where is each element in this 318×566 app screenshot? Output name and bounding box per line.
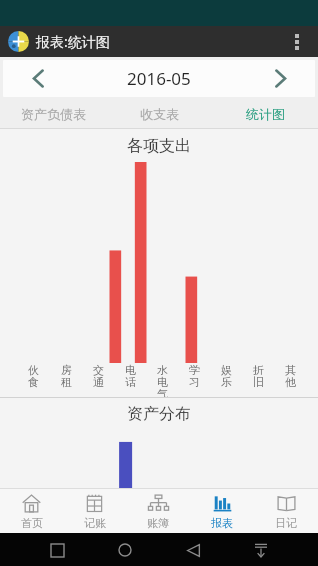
button[interactable]: 记账: [63, 489, 126, 533]
button[interactable]: 账簿: [126, 489, 190, 533]
button[interactable]: Hide navigation bar: [246, 535, 276, 565]
button[interactable]: 收支表: [106, 100, 212, 128]
button[interactable]: Home: [110, 535, 140, 565]
button[interactable]: 日记: [254, 489, 318, 533]
button[interactable]: Recent apps: [42, 535, 72, 565]
staticText: 报表:统计图: [36, 32, 110, 51]
staticText: 2016-05: [127, 67, 191, 90]
button[interactable]: 统计图: [212, 100, 318, 128]
staticText: 各项支出: [127, 136, 191, 156]
staticText: 水 电 气: [157, 363, 168, 397]
staticText: 收支表: [140, 106, 179, 122]
button[interactable]: 资产负债表: [0, 100, 106, 128]
staticText: 伙 食: [28, 363, 39, 389]
staticText: 折 旧: [253, 363, 264, 389]
staticText: 房 租: [61, 363, 72, 389]
button[interactable]: More options: [284, 29, 310, 55]
staticText: 娱 乐: [221, 363, 232, 389]
button[interactable]: Back: [178, 535, 208, 565]
staticText: 资产负债表: [21, 106, 86, 122]
button[interactable]: 首页: [0, 489, 63, 533]
staticText: 首页: [21, 516, 43, 530]
button[interactable]: Previous month: [3, 60, 73, 97]
staticText: 账簿: [147, 516, 169, 530]
staticText: 交 通: [93, 363, 104, 389]
staticText: 其 他: [285, 363, 296, 389]
staticText: 电 话: [125, 363, 136, 389]
staticText: 统计图: [246, 106, 285, 122]
button[interactable]: Next month: [245, 60, 315, 97]
staticText: 资产分布: [127, 404, 191, 424]
staticText: 报表: [211, 516, 233, 530]
staticText: 记账: [84, 516, 106, 530]
button[interactable]: 报表: [190, 489, 254, 533]
staticText: 学 习: [189, 363, 200, 389]
staticText: 日记: [275, 516, 297, 530]
